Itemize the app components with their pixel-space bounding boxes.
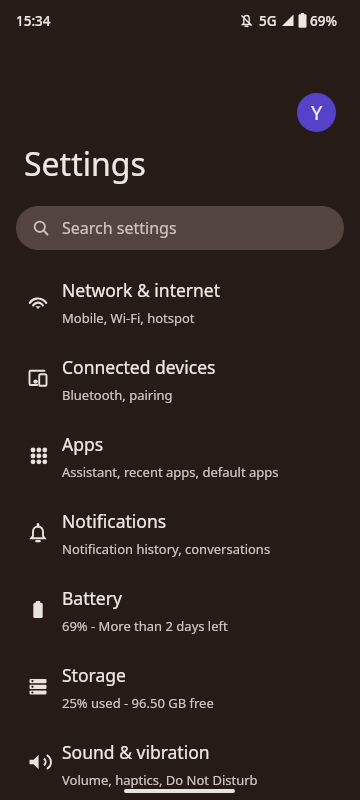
staticText: 69% <box>310 12 337 30</box>
staticText: Network & internet <box>62 278 221 302</box>
staticText: Notifications <box>62 509 167 533</box>
staticText: Battery <box>62 586 122 610</box>
button[interactable]: Apps <box>0 416 360 493</box>
button[interactable]: Battery <box>0 570 360 647</box>
staticText: Apps <box>62 432 104 456</box>
button[interactable]: Storage <box>0 647 360 724</box>
button[interactable]: Search settings <box>16 206 344 250</box>
button[interactable]: Y <box>297 93 336 132</box>
staticText: 69% - More than 2 days left <box>62 617 228 635</box>
staticText: Y <box>311 99 323 126</box>
staticText: Storage <box>62 663 126 687</box>
staticText: Settings <box>24 142 146 186</box>
staticText: 5G <box>259 12 277 30</box>
button[interactable]: Network & internet <box>0 262 360 339</box>
staticText: Assistant, recent apps, default apps <box>62 463 279 481</box>
staticText: 25% used - 96.50 GB free <box>62 694 214 712</box>
staticText: 15:34 <box>16 12 51 30</box>
staticText: Bluetooth, pairing <box>62 386 173 404</box>
staticText: Connected devices <box>62 355 216 379</box>
staticText: Search settings <box>62 217 177 239</box>
staticText: Volume, haptics, Do Not Disturb <box>62 771 258 789</box>
button[interactable]: Sound & vibration <box>0 724 360 800</box>
staticText: Mobile, Wi-Fi, hotspot <box>62 309 195 327</box>
button[interactable]: Notifications <box>0 493 360 570</box>
staticText: Notification history, conversations <box>62 540 271 558</box>
staticText: Sound & vibration <box>62 740 210 764</box>
button[interactable]: Connected devices <box>0 339 360 416</box>
